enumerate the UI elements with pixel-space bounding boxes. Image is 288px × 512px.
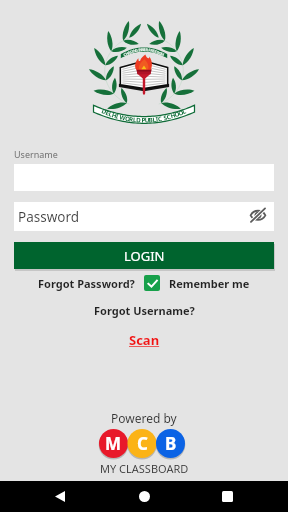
button[interactable]: Show password <box>247 206 269 228</box>
staticText: Scan <box>129 331 160 349</box>
staticText: Powered by <box>111 410 177 426</box>
staticText: C <box>137 432 148 455</box>
button[interactable]: Forgot Password? <box>38 276 135 291</box>
button[interactable]: Home <box>130 483 158 511</box>
staticText: B <box>165 432 177 455</box>
staticText: Forgot Password? <box>38 276 135 291</box>
button[interactable]: Password <box>14 202 274 231</box>
staticText: Forgot Username? <box>94 303 195 318</box>
button[interactable]: Forgot Username? <box>94 303 195 318</box>
button[interactable]: Back <box>46 483 74 511</box>
staticText: LOGIN <box>124 247 165 265</box>
button[interactable]: LOGIN <box>14 242 274 269</box>
staticText: Username <box>14 148 58 160</box>
button[interactable]: Scan <box>129 331 160 349</box>
staticText: M <box>105 432 122 455</box>
staticText: MY CLASSBOARD <box>100 461 189 476</box>
button[interactable]: Remember me <box>144 275 250 291</box>
staticText: Password <box>18 208 80 226</box>
button[interactable]: Recents <box>213 483 241 511</box>
staticText: Remember me <box>169 276 250 291</box>
